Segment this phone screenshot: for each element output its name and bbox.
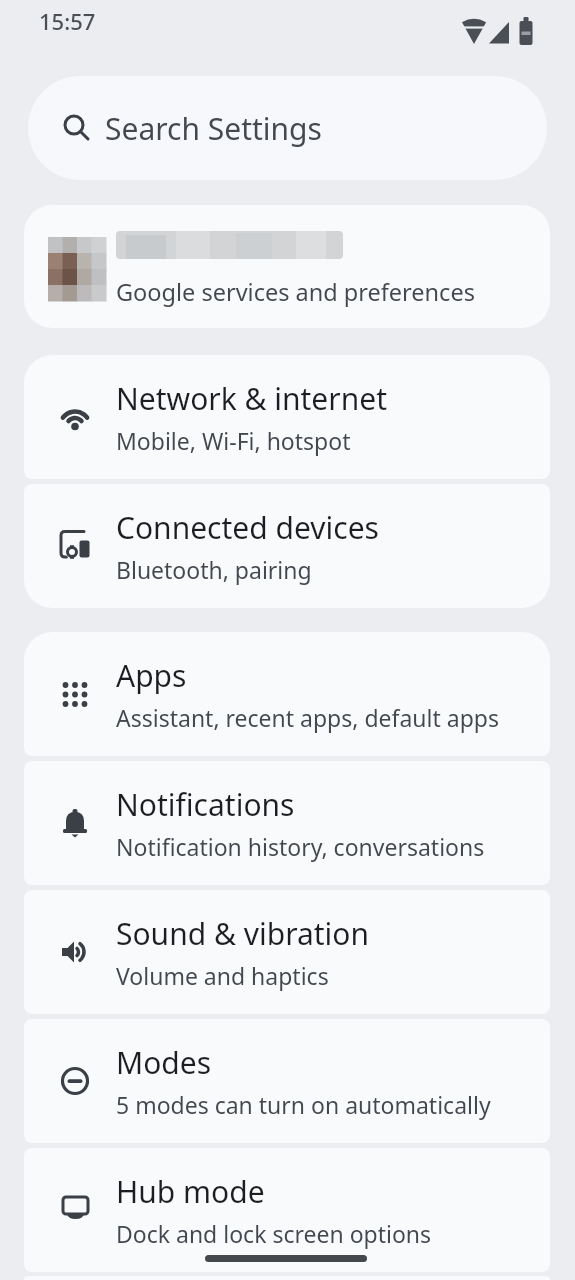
staticText: Apps — [116, 655, 187, 696]
button[interactable]: Search Settings — [28, 76, 547, 180]
staticText: Sound & vibration — [116, 913, 370, 954]
staticText: Notifications — [116, 784, 295, 825]
button[interactable]: Google services and preferences — [24, 205, 550, 328]
staticText: 5 modes can turn on automatically — [116, 1089, 491, 1120]
staticText: Connected devices — [116, 507, 379, 548]
staticText: Volume and haptics — [116, 960, 329, 991]
staticText: 15:57 — [39, 6, 96, 36]
staticText: Assistant, recent apps, default apps — [116, 702, 499, 733]
staticText: Hub mode — [116, 1171, 265, 1212]
button[interactable]: Apps — [24, 632, 550, 756]
staticText: Network & internet — [116, 378, 387, 419]
staticText: Modes — [116, 1042, 212, 1083]
staticText: Search Settings — [105, 108, 322, 149]
staticText: Dock and lock screen options — [116, 1218, 432, 1249]
button[interactable]: Sound & vibration — [24, 890, 550, 1014]
staticText: Bluetooth, pairing — [116, 554, 312, 585]
button[interactable]: Notifications — [24, 761, 550, 885]
staticText: Google services and preferences — [116, 276, 475, 308]
button[interactable]: Modes — [24, 1019, 550, 1143]
button[interactable]: Network & internet — [24, 355, 550, 479]
staticText: Notification history, conversations — [116, 831, 485, 862]
button[interactable]: Connected devices — [24, 484, 550, 608]
button[interactable]: Hub mode — [24, 1148, 550, 1272]
staticText: Mobile, Wi-Fi, hotspot — [116, 425, 351, 456]
